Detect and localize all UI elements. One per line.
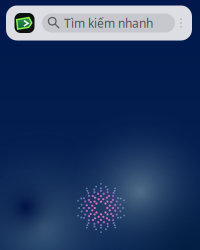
staticText: Tìm kiếm nhanh bbox=[64, 15, 153, 31]
button[interactable]: More options bbox=[175, 12, 187, 33]
button[interactable]: Tìm kiếm nhanh bbox=[42, 13, 175, 32]
button[interactable]: App shortcut bbox=[14, 13, 34, 33]
